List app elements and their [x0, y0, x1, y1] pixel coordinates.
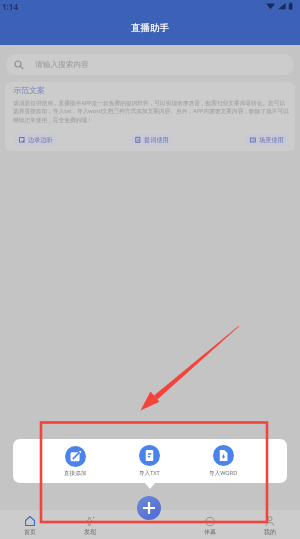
- staticText: 边录边听: [28, 136, 53, 144]
- staticText: 首页: [24, 528, 36, 536]
- staticText: 场景使用: [259, 136, 284, 144]
- button[interactable]: 发现: [60, 510, 120, 539]
- button[interactable]: Add: [137, 496, 161, 520]
- staticText: 导入WORD: [209, 469, 238, 477]
- staticText: 示范文案: [13, 85, 45, 95]
- staticText: 直接添加: [64, 470, 87, 477]
- staticText: 提词使用: [144, 136, 169, 144]
- staticText: 我的: [264, 528, 276, 536]
- button[interactable]: 边录边听: [14, 134, 57, 146]
- staticText: 导入TXT: [139, 469, 160, 477]
- staticText: 直播助手: [131, 22, 169, 34]
- staticText: 该消息仅供使用，直播助手APP是一款免费的提词软件，可以实现录屏语音，配置行业文…: [13, 99, 290, 124]
- button[interactable]: 请输入搜索内容: [6, 54, 294, 75]
- button[interactable]: 首页: [0, 510, 60, 539]
- button[interactable]: 伴幕: [180, 510, 240, 539]
- button[interactable]: 导入WORD: [192, 443, 255, 479]
- staticText: 发现: [84, 528, 96, 536]
- staticText: 伴幕: [204, 528, 216, 536]
- button[interactable]: 场景使用: [245, 134, 288, 146]
- button[interactable]: 直接添加: [44, 444, 107, 479]
- button[interactable]: 导入TXT: [118, 443, 181, 479]
- staticText: 1:14: [2, 1, 18, 12]
- button[interactable]: 我的: [240, 510, 300, 539]
- staticText: 请输入搜索内容: [35, 60, 89, 70]
- button[interactable]: 提词使用: [130, 134, 173, 146]
